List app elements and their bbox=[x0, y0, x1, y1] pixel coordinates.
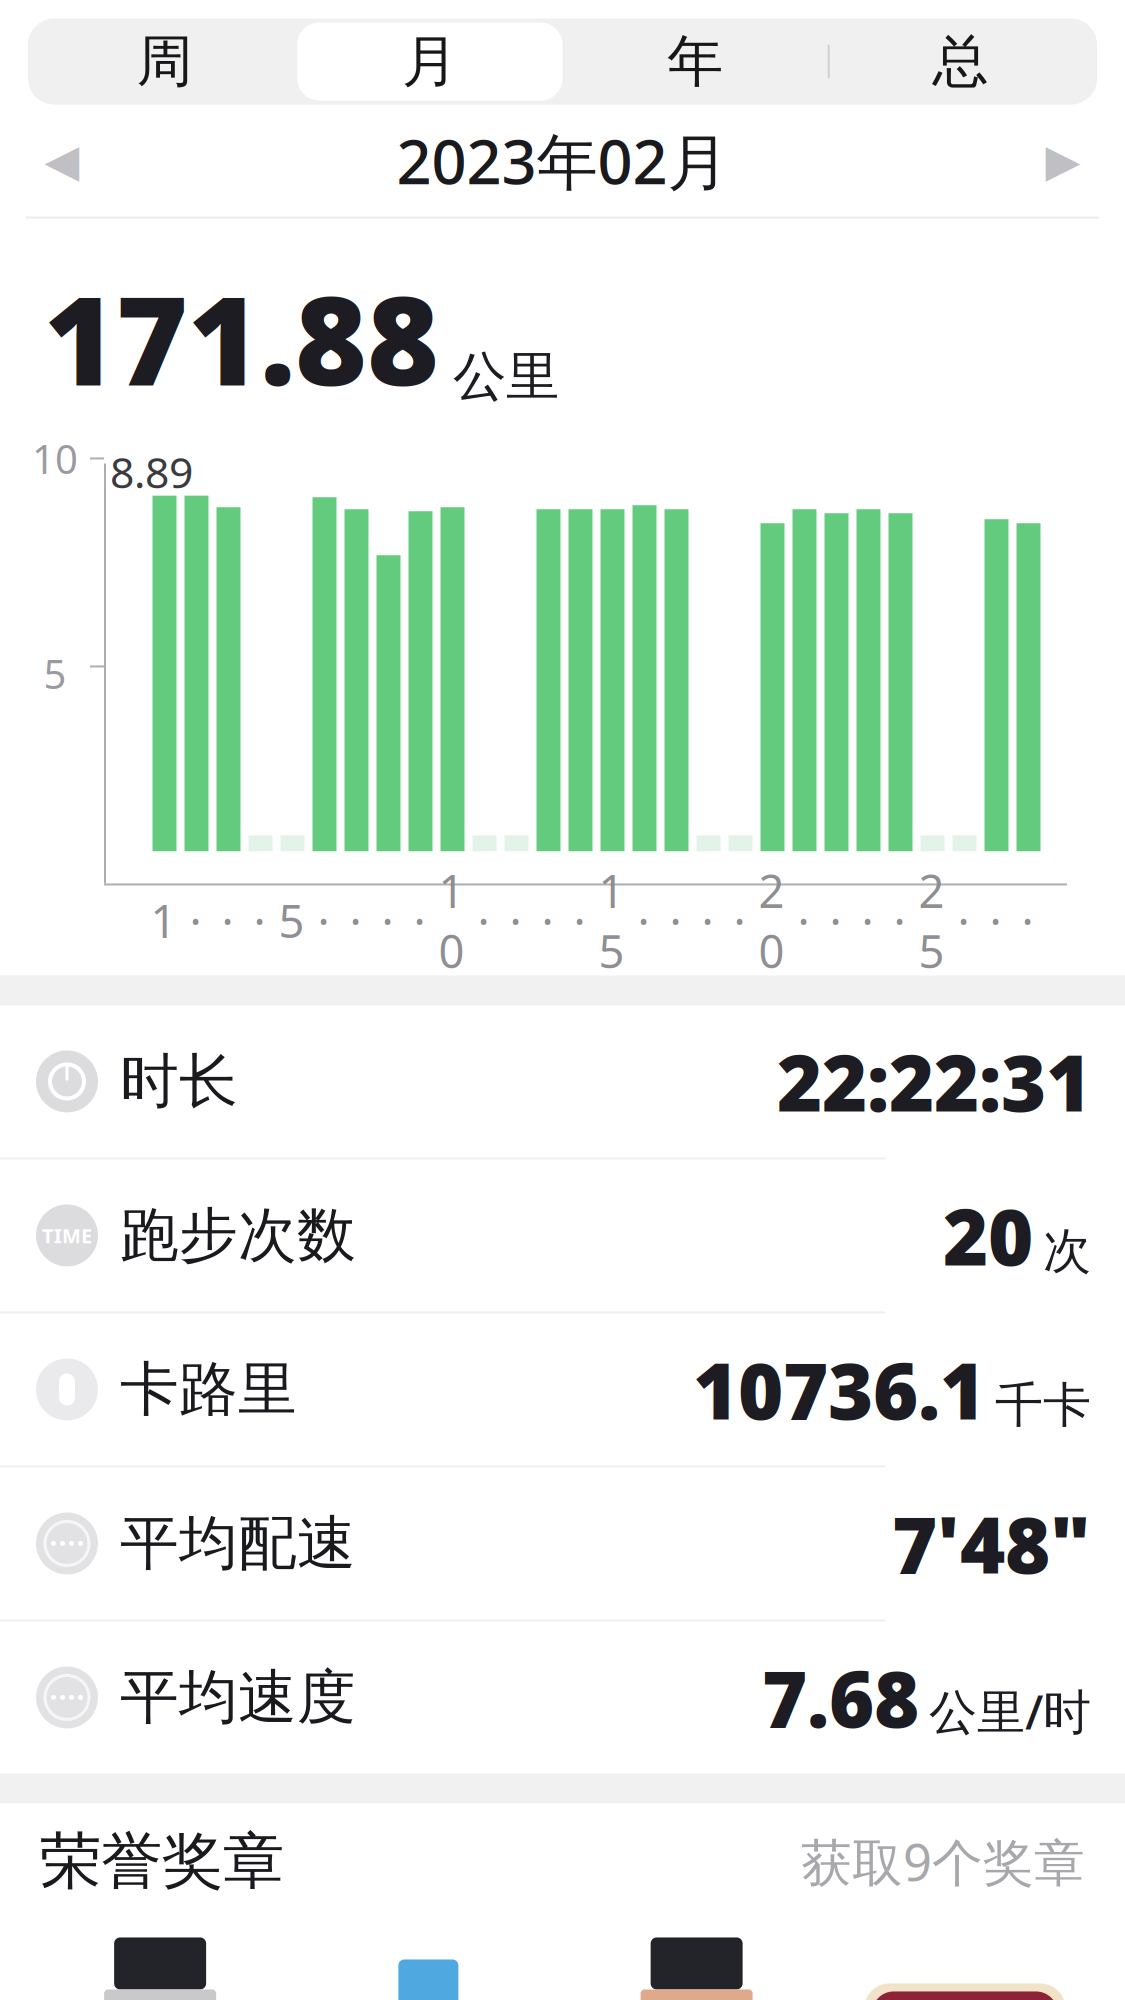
staticText: 平均配速 bbox=[120, 1507, 356, 1579]
staticText: · bbox=[957, 890, 969, 950]
staticText: · bbox=[861, 890, 873, 950]
staticText: 时长 bbox=[120, 1045, 238, 1117]
staticText: 跑步次数 bbox=[120, 1199, 356, 1271]
staticText: TIME bbox=[42, 1222, 92, 1249]
staticText: 荣誉奖章 bbox=[40, 1824, 284, 1899]
button[interactable]: 年 bbox=[562, 23, 828, 101]
button[interactable]: Silver medal bbox=[26, 1937, 294, 2000]
staticText: 公里/时 bbox=[929, 1679, 1091, 1743]
staticText: 次 bbox=[1043, 1222, 1091, 1281]
staticText: 月 bbox=[402, 27, 458, 96]
staticText: 171.88 bbox=[44, 257, 439, 419]
staticText: 获取9个奖章 bbox=[801, 1828, 1085, 1895]
button[interactable]: 周 bbox=[32, 23, 297, 101]
staticText: 千卡 bbox=[995, 1376, 1091, 1435]
button[interactable]: 卡路里 bbox=[0, 1313, 1125, 1467]
staticText: 5 bbox=[43, 647, 66, 700]
staticText: · bbox=[381, 890, 393, 950]
staticText: 卡路里 bbox=[120, 1353, 297, 1425]
staticText: · bbox=[637, 890, 649, 950]
button[interactable]: Zodiac medal bbox=[294, 1937, 562, 2000]
staticText: 15 bbox=[598, 860, 624, 981]
staticText: 25 bbox=[918, 860, 944, 981]
staticText: 10 bbox=[438, 860, 464, 981]
button[interactable]: Previous month bbox=[20, 119, 104, 203]
staticText: · bbox=[253, 890, 265, 950]
staticText: · bbox=[541, 890, 553, 950]
staticText: 7'48" bbox=[892, 1492, 1091, 1595]
staticText: 20 bbox=[943, 1184, 1033, 1287]
staticText: · bbox=[829, 890, 841, 950]
staticText: 总 bbox=[932, 27, 988, 96]
staticText: 8.89 bbox=[110, 443, 193, 500]
staticText: · bbox=[509, 890, 521, 950]
button[interactable]: TIME bbox=[0, 1159, 1125, 1313]
staticText: · bbox=[1021, 890, 1033, 950]
staticText: · bbox=[573, 890, 585, 950]
button[interactable]: Commemorative medal bbox=[831, 1967, 1099, 2000]
staticText: · bbox=[893, 890, 905, 950]
button[interactable]: 时长 bbox=[0, 1005, 1125, 1159]
staticText: · bbox=[989, 890, 1001, 950]
staticText: · bbox=[349, 890, 361, 950]
button[interactable]: 总 bbox=[828, 23, 1093, 101]
button[interactable]: Next month bbox=[1021, 119, 1105, 203]
button[interactable]: 获取9个奖章 bbox=[801, 1828, 1085, 1895]
staticText: 1 bbox=[150, 890, 176, 950]
staticText: 10 bbox=[32, 432, 78, 485]
staticText: · bbox=[221, 890, 233, 950]
staticText: 年 bbox=[667, 27, 723, 96]
staticText: 5 bbox=[278, 890, 304, 950]
staticText: · bbox=[733, 890, 745, 950]
staticText: · bbox=[477, 890, 489, 950]
staticText: · bbox=[701, 890, 713, 950]
button[interactable]: 平均配速 bbox=[0, 1467, 1125, 1621]
staticText: · bbox=[413, 890, 425, 950]
staticText: ▶ bbox=[1045, 135, 1080, 186]
staticText: · bbox=[797, 890, 809, 950]
staticText: ◀ bbox=[44, 135, 79, 186]
button[interactable]: 平均速度 bbox=[0, 1621, 1125, 1773]
staticText: 周 bbox=[137, 27, 193, 96]
staticText: 10736.1 bbox=[693, 1338, 985, 1441]
staticText: 公里 bbox=[453, 344, 559, 409]
staticText: · bbox=[317, 890, 329, 950]
staticText: · bbox=[189, 890, 201, 950]
staticText: · bbox=[669, 890, 681, 950]
staticText: 平均速度 bbox=[120, 1661, 356, 1733]
staticText: 2023年02月 bbox=[396, 120, 728, 201]
staticText: 22:22:31 bbox=[777, 1030, 1091, 1133]
button[interactable]: Rose gold medal bbox=[562, 1937, 831, 2000]
staticText: 7.68 bbox=[762, 1646, 919, 1749]
button[interactable]: 月 bbox=[297, 23, 562, 101]
staticText: 20 bbox=[758, 860, 784, 981]
